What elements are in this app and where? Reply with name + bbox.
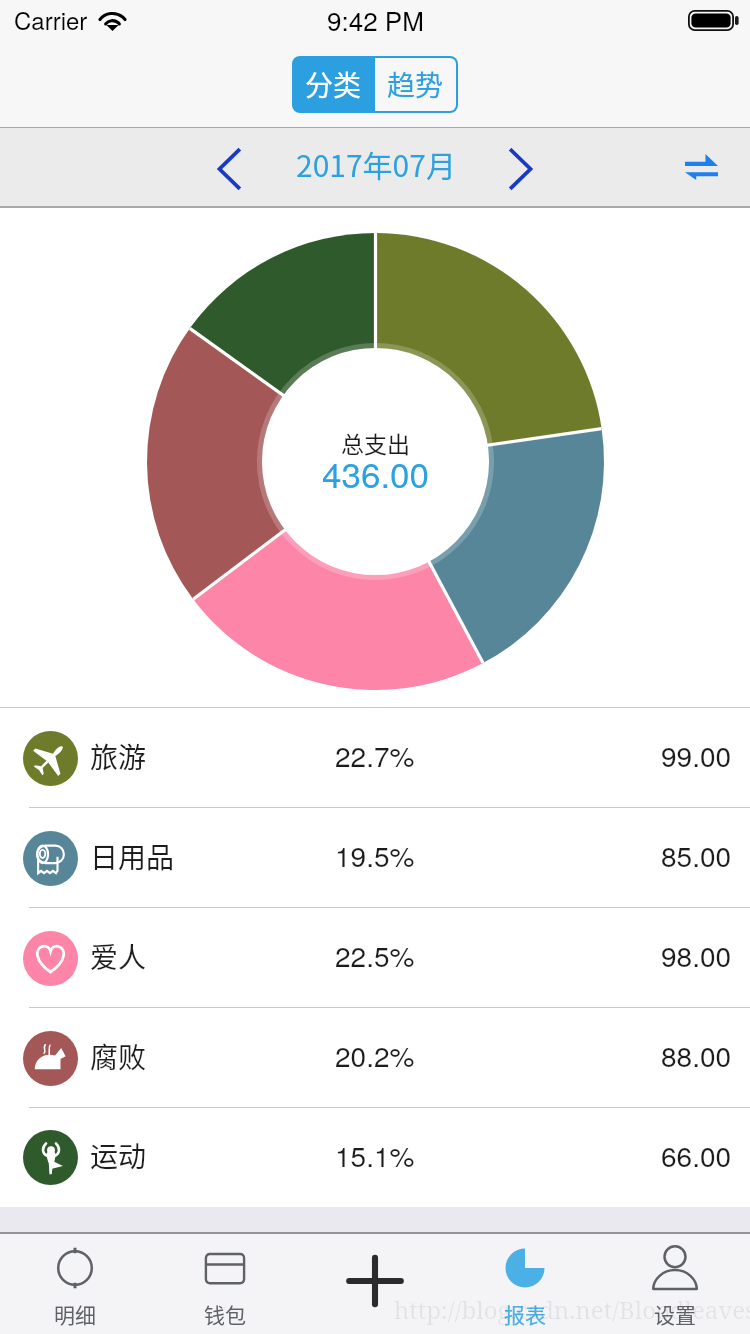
staticText: 9:42 PM [327,1,424,38]
staticText: 日用品 [90,836,175,877]
staticText: Carrier [14,2,88,36]
staticText: 趋势 [387,64,444,105]
staticText: 20.2% [335,1035,415,1075]
staticText: 2017年07月 [296,142,456,185]
button[interactable]: Switch chart type [670,136,732,198]
button[interactable]: 报表 [450,1234,600,1334]
staticText: 22.5% [335,935,415,975]
staticText: 设置 [654,1299,696,1329]
staticText: 15.1% [335,1135,415,1175]
staticText: 99.00 [661,735,732,775]
staticText: 19.5% [335,835,415,875]
staticText: 98.00 [661,935,732,975]
staticText: 报表 [504,1299,546,1329]
button[interactable]: 旅游 [0,708,750,808]
staticText: 腐败 [90,1036,147,1077]
staticText: 运动 [90,1135,147,1176]
button[interactable]: Next month [491,139,551,199]
button[interactable]: 设置 [600,1234,750,1334]
staticText: 钱包 [204,1299,246,1329]
staticText: 旅游 [90,736,147,777]
staticText: 明细 [54,1299,96,1329]
staticText: 22.7% [335,735,415,775]
button[interactable]: 运动 [0,1108,750,1207]
button[interactable]: Add record [300,1234,450,1334]
staticText: 436.00 [322,448,430,498]
button[interactable]: 明细 [0,1234,150,1334]
staticText: 85.00 [661,835,732,875]
button[interactable]: Previous month [199,139,259,199]
button[interactable]: 爱人 [0,908,750,1008]
button[interactable]: 趋势 [375,58,456,111]
staticText: 66.00 [661,1135,732,1175]
button[interactable]: 钱包 [150,1234,300,1334]
staticText: 88.00 [661,1035,732,1075]
staticText: 分类 [305,64,362,105]
button[interactable]: 腐败 [0,1008,750,1108]
button[interactable]: 日用品 [0,808,750,908]
staticText: 爱人 [90,936,147,977]
staticText: 总支出 [341,426,410,459]
staticText: http://blog.csdn.net/Bloodleaves [394,1293,750,1326]
button[interactable]: 分类 [292,56,375,113]
